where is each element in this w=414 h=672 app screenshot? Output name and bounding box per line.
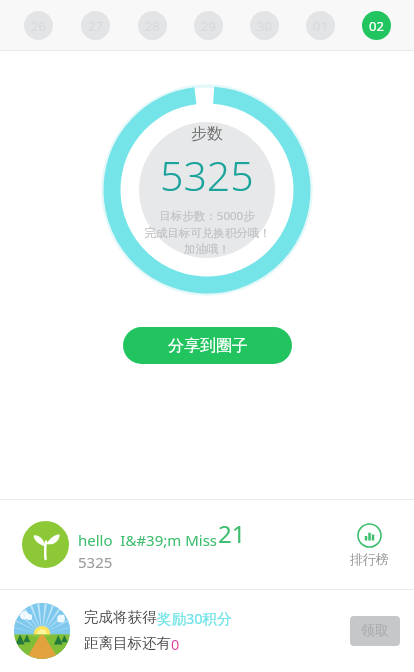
button[interactable]: hello I&#39;m Miss [0, 500, 414, 589]
other: 排行榜 [357, 523, 382, 548]
staticText: 完成将获得 [84, 608, 157, 626]
button[interactable]: 领取 [350, 616, 400, 646]
button[interactable]: 30 [250, 11, 279, 40]
staticText: 02 [369, 17, 384, 35]
staticText: 27 [88, 17, 103, 35]
staticText: 步数 [191, 124, 223, 144]
button[interactable]: 26 [24, 11, 53, 40]
staticText: 21 [218, 517, 246, 550]
button[interactable]: 01 [306, 11, 335, 40]
staticText: 01 [313, 17, 328, 35]
button[interactable]: 28 [138, 11, 167, 40]
button[interactable]: 排行榜 [347, 520, 392, 570]
button[interactable]: 分享到圈子 [123, 327, 292, 364]
staticText: 距离目标还有 [84, 634, 171, 652]
staticText: 30 [257, 17, 272, 35]
staticText: 加油哦！ [184, 242, 230, 256]
staticText: 28 [145, 17, 160, 35]
staticText: 29 [201, 17, 216, 35]
staticText: hello I&#39;m Miss [78, 530, 218, 550]
staticText: 目标步数：5000步 [159, 208, 255, 224]
staticText: 完成目标可兑换积分哦！ [144, 226, 271, 240]
staticText: 奖励30积分 [157, 608, 232, 628]
staticText: 5325 [160, 147, 254, 203]
staticText: 5325 [78, 552, 113, 572]
staticText: 0 [171, 634, 180, 654]
staticText: 排行榜 [350, 551, 389, 567]
staticText: 26 [31, 17, 46, 35]
button[interactable]: 27 [81, 11, 110, 40]
staticText: 分享到圈子 [168, 336, 248, 356]
staticText: 领取 [361, 622, 389, 640]
button[interactable]: 29 [194, 11, 223, 40]
button[interactable]: 02 [362, 11, 391, 40]
